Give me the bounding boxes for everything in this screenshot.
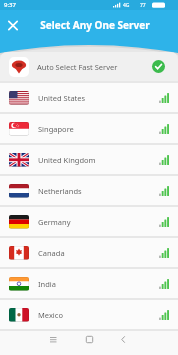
staticText: Netherlands: [38, 186, 82, 196]
button[interactable]: Singapore: [0, 114, 178, 143]
button[interactable]: United Kingdom: [0, 145, 178, 174]
button[interactable]: United States: [0, 83, 178, 112]
staticText: Mexico: [38, 310, 63, 320]
staticText: 9:37: [4, 1, 16, 9]
button[interactable]: Germany: [0, 207, 178, 236]
staticText: Singapore: [38, 124, 74, 134]
staticText: India: [38, 279, 56, 289]
button[interactable]: [42, 332, 65, 355]
button[interactable]: Mexico: [0, 300, 178, 329]
staticText: Germany: [38, 217, 71, 227]
staticText: 77: [140, 2, 146, 9]
button[interactable]: Canada: [0, 238, 178, 267]
button[interactable]: [78, 332, 101, 355]
staticText: Canada: [38, 248, 65, 258]
button[interactable]: Auto Select Fast Server: [0, 52, 178, 81]
button[interactable]: [113, 332, 136, 355]
staticText: United States: [38, 93, 86, 103]
staticText: 4G: [123, 2, 130, 9]
button[interactable]: Netherlands: [0, 176, 178, 205]
staticText: Auto Select Fast Server: [37, 62, 118, 72]
staticText: United Kingdom: [38, 155, 96, 165]
button[interactable]: [2, 14, 24, 36]
button[interactable]: India: [0, 269, 178, 298]
staticText: Select Any One Server: [40, 18, 150, 32]
